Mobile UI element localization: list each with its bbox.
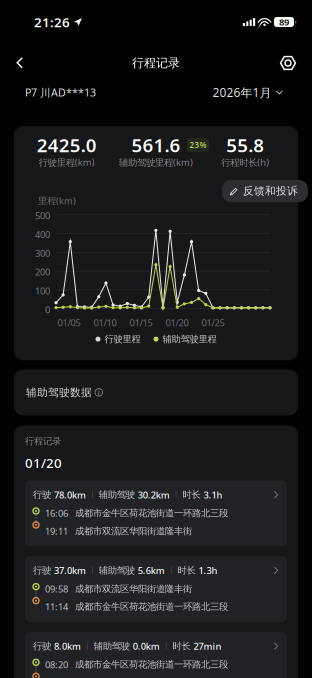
staticText: 辅助驾驶 [99, 489, 138, 500]
staticText: 27min [194, 640, 222, 652]
button[interactable]: 返回 [0, 47, 38, 79]
staticText: 23% [189, 140, 206, 150]
staticText: 01/20 [165, 316, 188, 329]
staticText: 01/25 [201, 316, 224, 329]
staticText: 行驶里程 [104, 333, 140, 345]
button[interactable]: 行驶 [25, 632, 287, 678]
staticText: 500 [35, 209, 50, 222]
staticText: 01/05 [57, 316, 80, 329]
staticText: 3.1h [204, 489, 223, 501]
button[interactable]: 反馈和投诉 [222, 180, 308, 202]
staticText: 300 [35, 247, 50, 259]
staticText: 08:20 [45, 658, 68, 671]
button[interactable]: 行驶 [25, 481, 287, 546]
staticText: 行驶 [33, 489, 54, 500]
button[interactable]: 行驶 [25, 556, 287, 622]
staticText: 成都市金牛区荷花池街道一环路北三段 [75, 601, 228, 612]
staticText: P7 川AD***13 [25, 85, 96, 100]
staticText: 成都市金牛区荷花池街道一环路北三段 [75, 507, 228, 519]
staticText: 55.8 [226, 133, 264, 157]
staticText: 2425.0 [37, 133, 97, 157]
staticText: 37.0km [54, 564, 86, 577]
button[interactable]: 2026年1月 [213, 84, 283, 100]
staticText: 辅助驾驶 [94, 640, 133, 652]
staticText: 21:26 [34, 13, 70, 31]
staticText: 561.6 [131, 133, 180, 157]
button[interactable]: 辅助驾驶数据 [14, 369, 298, 415]
staticText: 成都市双流区华阳街道隆丰街 [75, 525, 192, 537]
staticText: 辅助驾驶里程 [162, 333, 216, 345]
staticText: 8.0km [54, 640, 81, 652]
staticText: 行驶 [33, 640, 54, 652]
staticText: 01/20 [25, 454, 62, 472]
staticText: 5.6km [138, 564, 165, 577]
staticText: 行驶里程(km) [39, 156, 95, 168]
staticText: 2026年1月 [213, 84, 272, 100]
staticText: 100 [35, 285, 50, 297]
staticText: 11:14 [45, 600, 68, 613]
staticText: i [98, 387, 100, 398]
staticText: 30.2km [138, 489, 170, 501]
staticText: 行驶 [33, 565, 54, 576]
button[interactable]: P7 川AD***13 [25, 85, 96, 100]
button[interactable]: 设置 [266, 47, 312, 79]
staticText: 200 [35, 266, 50, 278]
staticText: 01/10 [93, 316, 116, 329]
staticText: 时长 [173, 640, 194, 652]
staticText: 16:06 [45, 507, 68, 519]
staticText: 行程记录 [25, 435, 61, 447]
staticText: 行程时长(h) [221, 156, 269, 168]
staticText: 01/15 [129, 316, 152, 329]
staticText: 400 [35, 228, 50, 241]
staticText: 时长 [183, 489, 204, 500]
staticText: 89 [279, 16, 289, 28]
staticText: 19:11 [45, 525, 68, 537]
staticText: 09:58 [45, 583, 68, 595]
staticText: 辅助驾驶数据 [26, 386, 92, 399]
staticText: 成都市双流区华阳街道隆丰街 [75, 583, 192, 595]
staticText: 1.3h [199, 564, 218, 577]
staticText: 辅助驾驶里程(km) [119, 156, 193, 168]
staticText: 时长 [178, 565, 199, 576]
staticText: 0 [45, 303, 50, 316]
staticText: 0.0km [133, 640, 160, 652]
staticText: 78.0km [54, 489, 86, 501]
staticText: 反馈和投诉 [243, 184, 298, 198]
staticText: 里程(km) [38, 194, 76, 207]
staticText: 行程记录 [132, 56, 180, 70]
staticText: 辅助驾驶 [99, 565, 138, 576]
staticText: 成都市金牛区荷花池街道一环路北三段 [75, 659, 228, 670]
